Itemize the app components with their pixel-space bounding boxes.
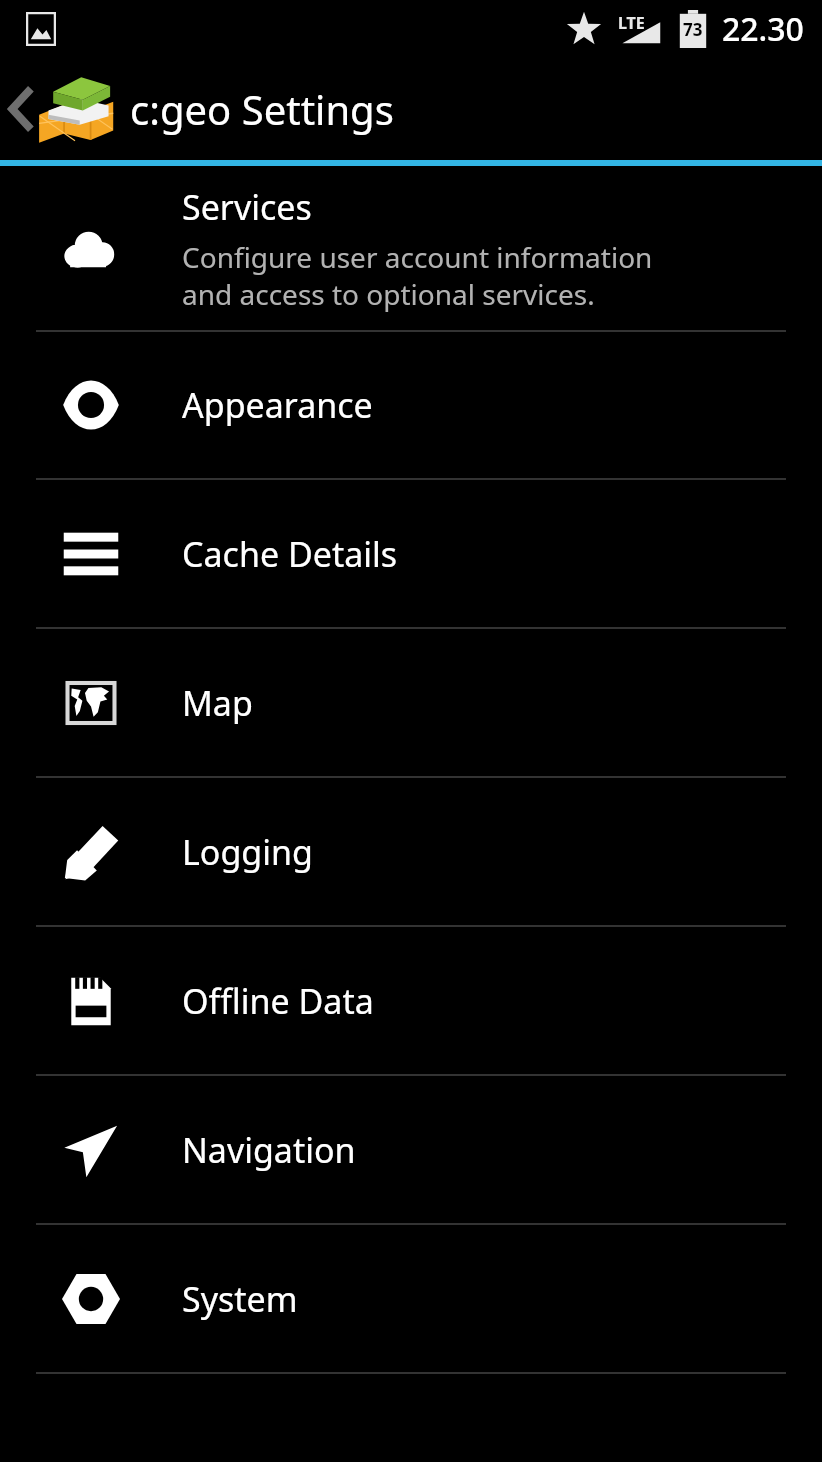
button[interactable]: Logging [0, 778, 822, 927]
button[interactable]: System [0, 1225, 822, 1374]
button[interactable]: Cache Details [0, 480, 822, 629]
staticText: 22.30 [722, 7, 804, 51]
button[interactable]: Navigate up [0, 57, 822, 160]
staticText: Map [182, 680, 253, 726]
button[interactable]: Appearance [0, 332, 822, 480]
staticText: Configure user account information and a… [182, 238, 653, 313]
staticText: Navigation [182, 1127, 356, 1173]
staticText: 73 [683, 18, 703, 41]
staticText: Offline Data [182, 978, 374, 1024]
staticText: Cache Details [182, 531, 398, 577]
button[interactable]: Map [0, 629, 822, 778]
staticText: Logging [182, 829, 313, 875]
button[interactable]: Offline Data [0, 927, 822, 1076]
button[interactable]: Navigation [0, 1076, 822, 1225]
button[interactable]: Services [0, 166, 822, 332]
staticText: c:geo Settings [130, 82, 394, 136]
staticText: System [182, 1276, 298, 1322]
staticText: Services [182, 184, 312, 230]
staticText: Appearance [182, 382, 373, 428]
staticText: LTE [618, 12, 645, 34]
